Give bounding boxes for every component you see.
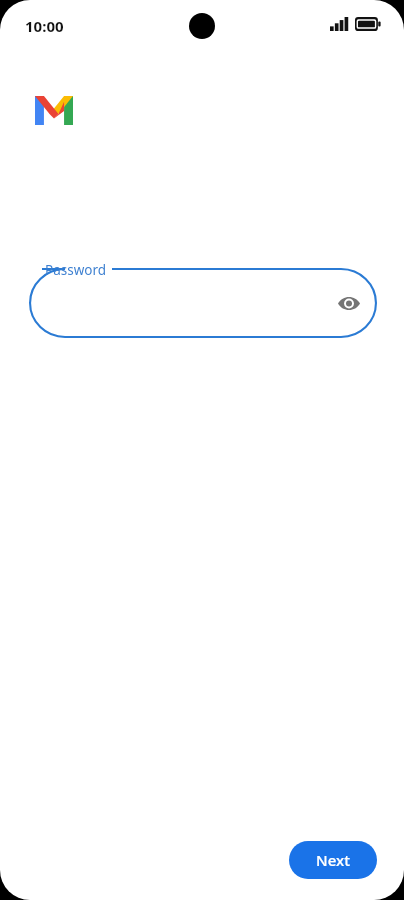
button[interactable]: Next <box>289 841 377 879</box>
staticText: Password <box>45 261 107 279</box>
button[interactable]: Password <box>29 262 377 338</box>
staticText: 10:00 <box>25 16 64 36</box>
button[interactable]: Show password <box>334 288 364 318</box>
staticText: Next <box>316 850 350 870</box>
